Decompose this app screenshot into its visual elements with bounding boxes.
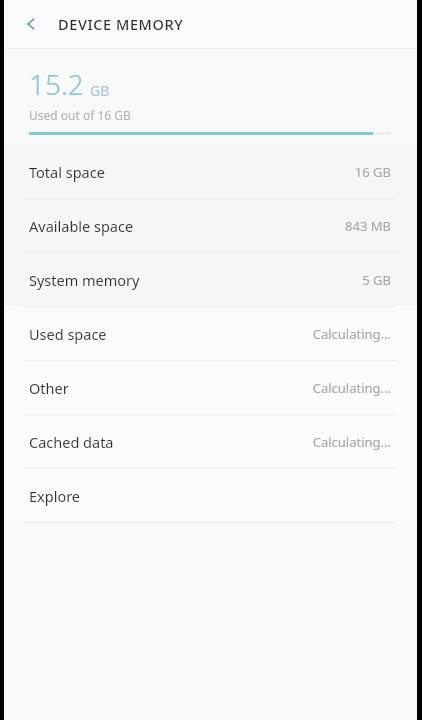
staticText: Cached data [29, 432, 114, 452]
staticText: 15.2 [29, 65, 84, 103]
staticText: 5 GB [362, 271, 391, 289]
staticText: Other [29, 378, 69, 398]
staticText: 843 MB [345, 217, 391, 235]
staticText: Used out of 16 GB [29, 107, 131, 123]
staticText: Calculating... [312, 379, 391, 397]
staticText: Used space [29, 324, 107, 344]
button[interactable]: Other [4, 361, 417, 414]
button[interactable]: Total space [4, 145, 417, 198]
staticText: Available space [29, 216, 134, 236]
staticText: Explore [29, 486, 81, 506]
button[interactable]: Used space [4, 307, 417, 360]
button[interactable]: Cached data [4, 415, 417, 468]
button[interactable]: Explore [4, 469, 417, 522]
staticText: Total space [29, 162, 105, 182]
staticText: Calculating... [312, 325, 391, 343]
staticText: 16 GB [354, 163, 391, 181]
button[interactable]: Navigate up [14, 6, 50, 42]
staticText: Calculating... [312, 433, 391, 451]
staticText: DEVICE MEMORY [58, 14, 184, 34]
button[interactable]: System memory [4, 253, 417, 306]
staticText: GB [90, 81, 110, 100]
staticText: System memory [29, 270, 140, 290]
button[interactable]: Available space [4, 199, 417, 252]
